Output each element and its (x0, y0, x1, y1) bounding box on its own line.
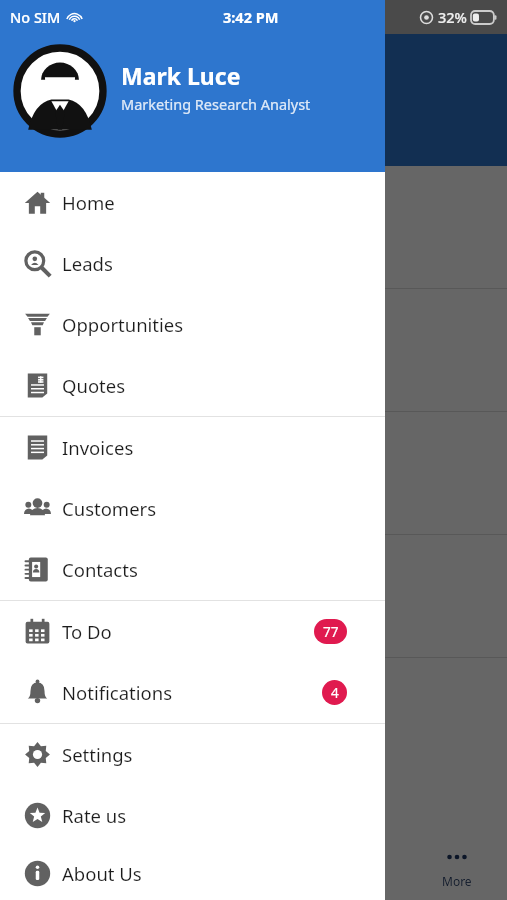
button[interactable]: Customers (0, 478, 385, 539)
button[interactable]: Leads (0, 233, 385, 294)
staticText: To Do (62, 619, 314, 644)
staticText: Notifications (62, 680, 322, 705)
staticText: Rate us (62, 803, 385, 828)
staticText: Leads (137, 873, 170, 889)
staticText: Leads (62, 251, 385, 276)
button[interactable]: Mark Luce (0, 0, 385, 172)
button[interactable]: Contacts (0, 539, 385, 600)
staticText: 32% (438, 7, 467, 27)
staticText: Settings (62, 742, 385, 767)
staticText: Contacts (62, 557, 385, 582)
button[interactable]: To Do (0, 601, 385, 662)
button[interactable]: Invoices (0, 417, 385, 478)
button[interactable]: About Us (0, 846, 385, 900)
staticText: Marketing Research Analyst (121, 94, 311, 114)
button[interactable]: Leads (102, 834, 204, 900)
button[interactable]: Quotes (0, 355, 385, 416)
staticText: About Us (62, 861, 385, 886)
button[interactable]: More (406, 834, 507, 900)
button[interactable]: Settings (0, 724, 385, 785)
staticText: No SIM (10, 7, 61, 27)
staticText: Sed do eiusmod assigned to you (16, 586, 245, 606)
staticText: More (442, 873, 472, 889)
staticText: Mark Luce (121, 60, 241, 91)
staticText: Home (34, 873, 69, 889)
button[interactable]: To Do (305, 834, 406, 900)
button[interactable]: Home (0, 172, 385, 233)
staticText: Opportunities (62, 312, 385, 337)
staticText: Customers (62, 496, 385, 521)
staticText: 4 (331, 684, 339, 702)
button[interactable]: Home (0, 834, 102, 900)
button[interactable]: Rate us (0, 785, 385, 846)
staticText: 77 (323, 623, 339, 641)
staticText: Quotes (62, 373, 385, 398)
staticText: Invoices (62, 435, 385, 460)
staticText: Home (62, 190, 385, 215)
staticText: 3:42 PM (223, 7, 279, 27)
button[interactable]: Notifications (0, 662, 385, 723)
button[interactable]: Opportunities (0, 294, 385, 355)
